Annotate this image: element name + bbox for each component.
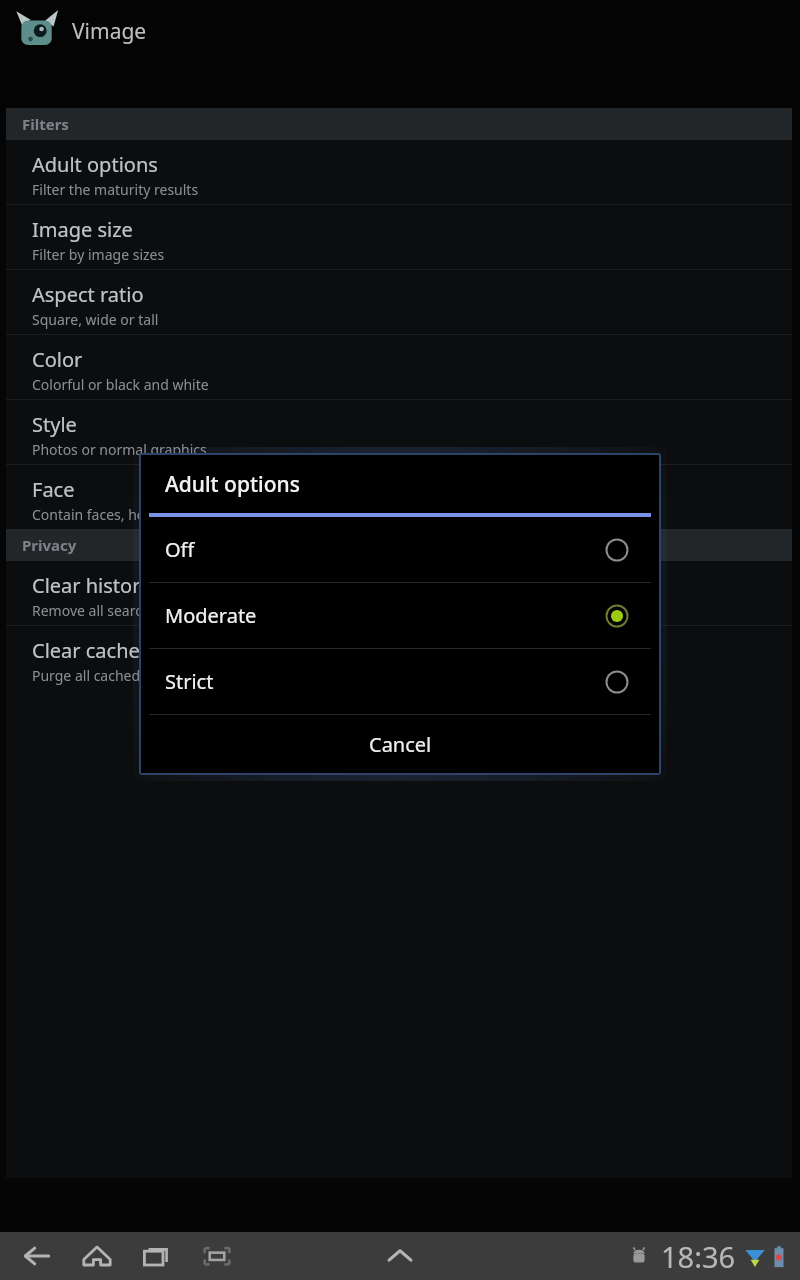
staticText: Square, wide or tall [32,310,159,329]
button[interactable]: Color [6,335,792,399]
button[interactable]: Expand [377,1233,423,1279]
button[interactable]: Back [14,1234,60,1278]
staticText: 18:36 [661,1237,736,1276]
staticText: Face [32,476,75,503]
button[interactable]: Screenshot [194,1234,240,1278]
button[interactable]: Moderate [141,583,659,648]
staticText: Off [165,536,605,563]
button[interactable]: Strict [141,649,659,714]
staticText: Cancel [369,731,432,758]
staticText: Image size [32,216,133,243]
staticText: Aspect ratio [32,281,144,308]
staticText: Clear history [32,572,151,599]
staticText: Filter the maturity results [32,180,199,199]
staticText: Color [32,346,83,373]
button[interactable]: Clear history [6,561,792,625]
staticText: Contain faces, heads or portraits [32,505,247,524]
button[interactable]: Adult options [6,140,792,204]
staticText: Adult options [32,151,158,178]
staticText: Moderate [165,602,605,629]
button[interactable]: Face [6,465,792,529]
staticText: Adult options [165,470,300,499]
staticText: Photos or normal graphics [32,440,207,459]
staticText: Filters [22,114,69,134]
staticText: Purge all cached images [32,666,192,685]
button[interactable]: Recent apps [134,1234,180,1278]
button[interactable]: Cancel [141,715,659,773]
staticText: Vimage [72,17,147,46]
button[interactable]: Off [141,517,659,582]
staticText: Style [32,411,77,438]
button[interactable]: Clear cache [6,626,792,690]
staticText: Strict [165,668,605,695]
staticText: Remove all search history [32,601,200,620]
staticText: Privacy [22,535,77,555]
button[interactable]: Style [6,400,792,464]
staticText: Colorful or black and white [32,375,209,394]
staticText: Clear cache [32,637,140,664]
button[interactable]: Image size [6,205,792,269]
staticText: Filter by image sizes [32,245,165,264]
button[interactable]: Aspect ratio [6,270,792,334]
button[interactable]: Home [74,1234,120,1278]
